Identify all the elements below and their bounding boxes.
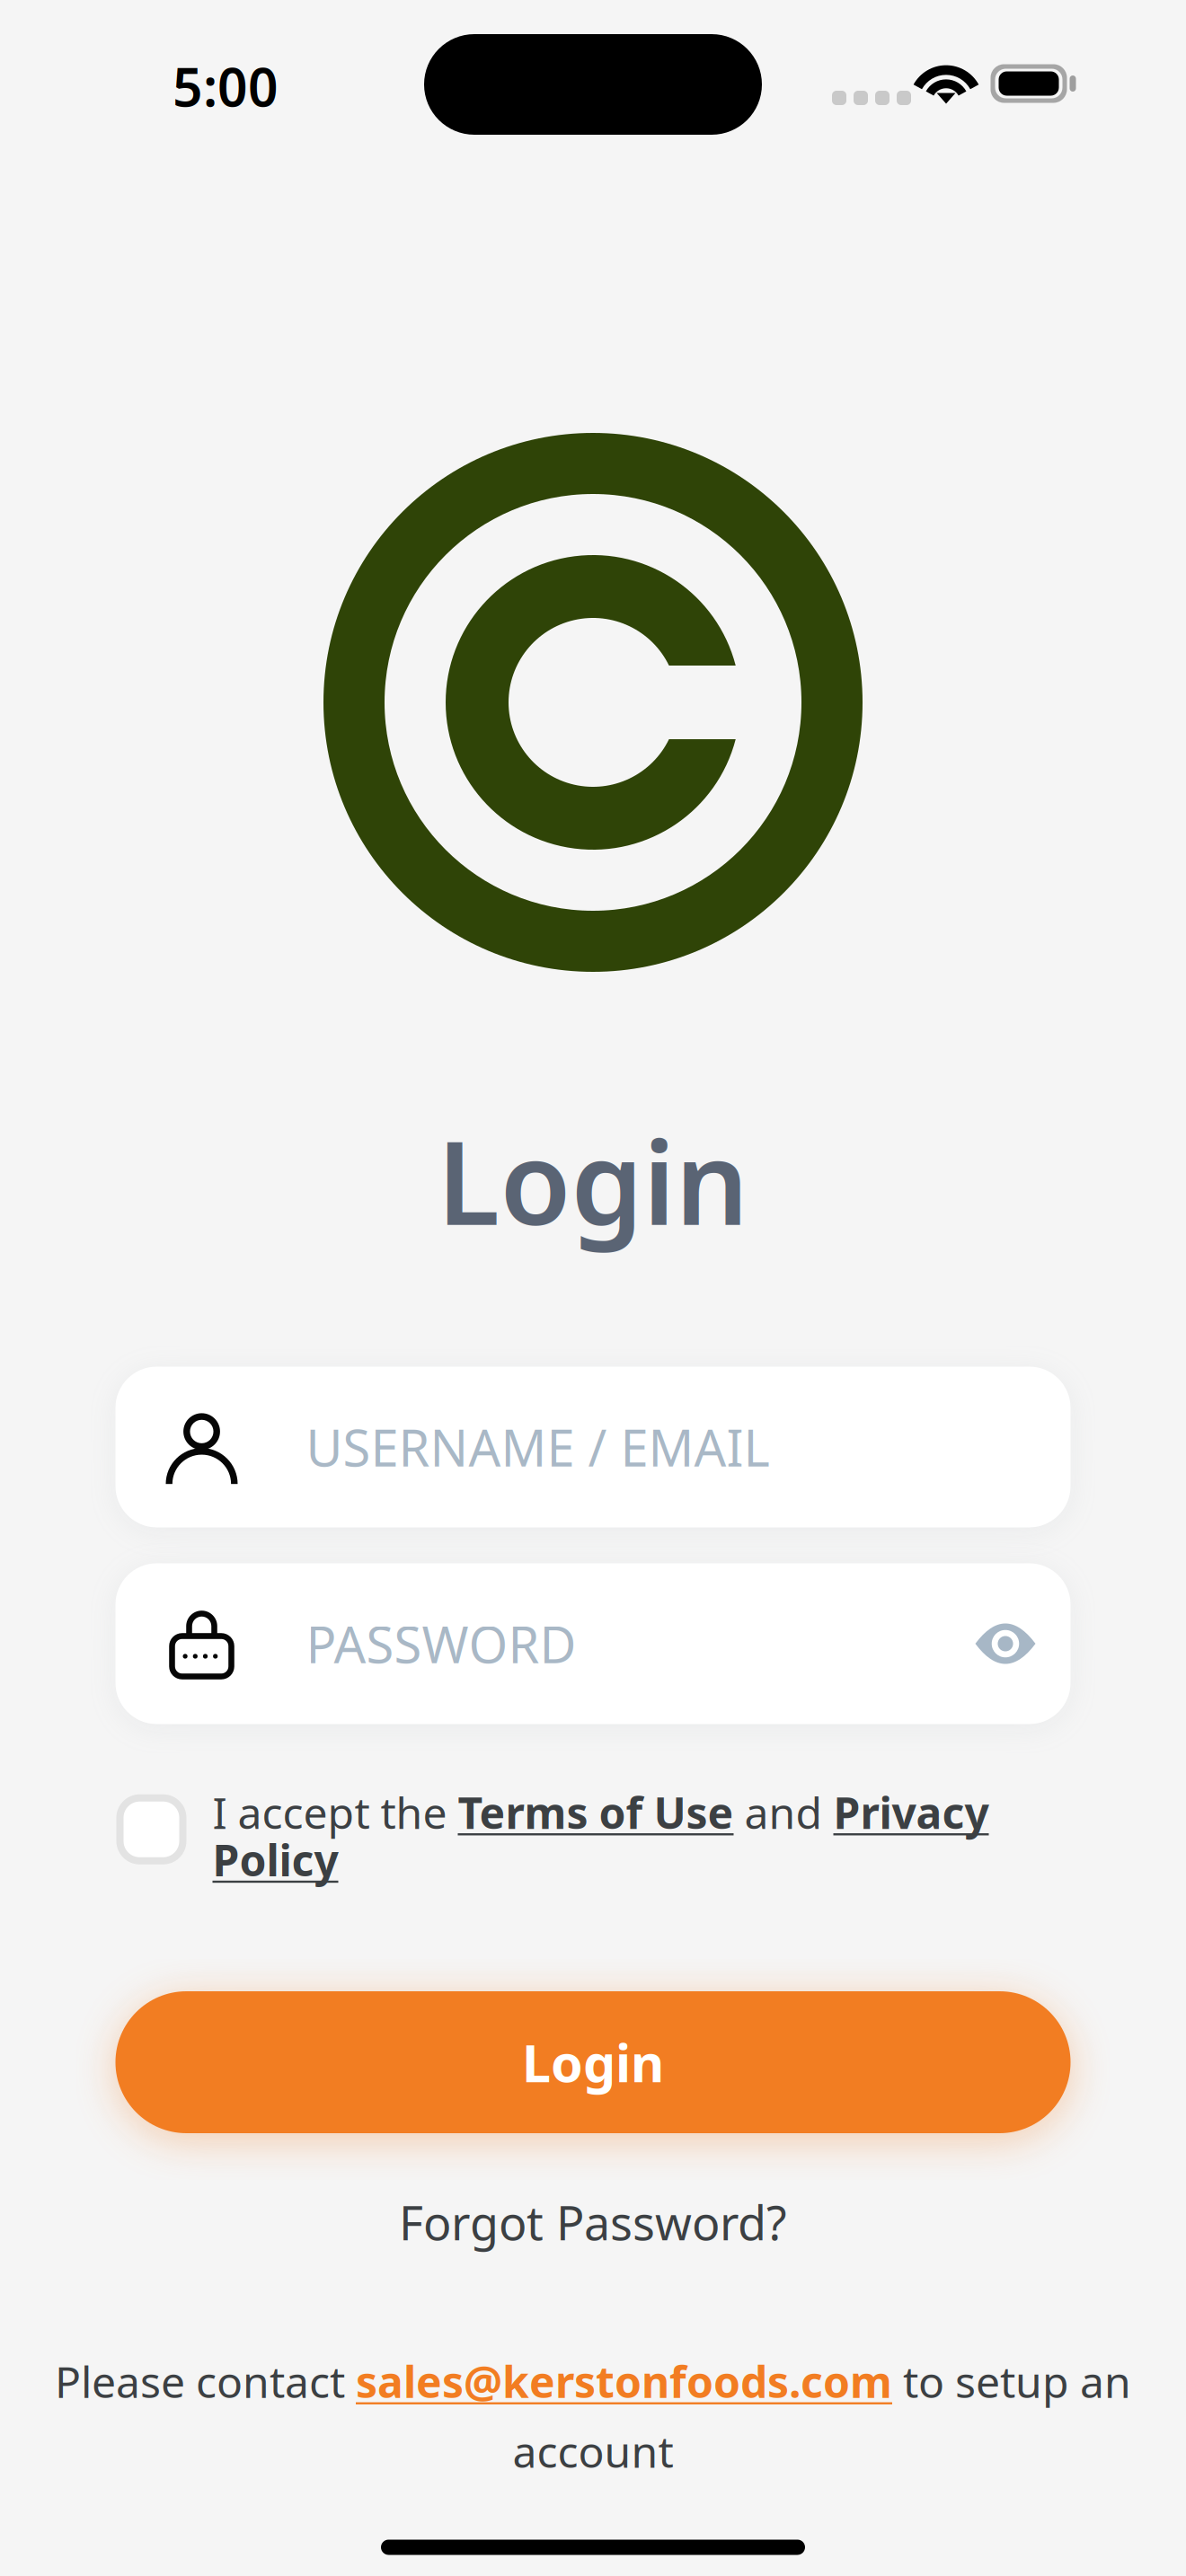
staticText: Please contact [55, 2353, 356, 2410]
staticText: sales@kerstonfoods.com [356, 2353, 892, 2410]
button[interactable]: PASSWORD [115, 1563, 1071, 1724]
staticText: Privacy [833, 1784, 989, 1841]
staticText: I accept the [212, 1784, 458, 1841]
staticText: Forgot Password? [399, 2191, 787, 2253]
button[interactable]: sales@kerstonfoods.com [356, 2353, 892, 2410]
staticText: 5:00 [173, 51, 279, 121]
button[interactable]: Terms of Use [458, 1784, 734, 1841]
staticText: Login [437, 1104, 749, 1257]
staticText: Terms of Use [458, 1784, 734, 1841]
staticText: USERNAME / EMAIL [306, 1414, 770, 1480]
button[interactable]: Forgot Password? [399, 2191, 787, 2253]
button[interactable]: Accept terms [120, 1798, 183, 1861]
button[interactable]: USERNAME / EMAIL [115, 1367, 1071, 1527]
staticText: and [734, 1784, 833, 1841]
button[interactable]: Privacy [833, 1784, 989, 1841]
staticText: account [513, 2422, 673, 2480]
staticText: Policy [212, 1831, 338, 1888]
button[interactable]: Policy [212, 1831, 338, 1888]
button[interactable]: Login [115, 1991, 1071, 2133]
staticText: Login [522, 2028, 664, 2096]
staticText: to setup an [892, 2353, 1131, 2410]
staticText: PASSWORD [306, 1610, 576, 1677]
